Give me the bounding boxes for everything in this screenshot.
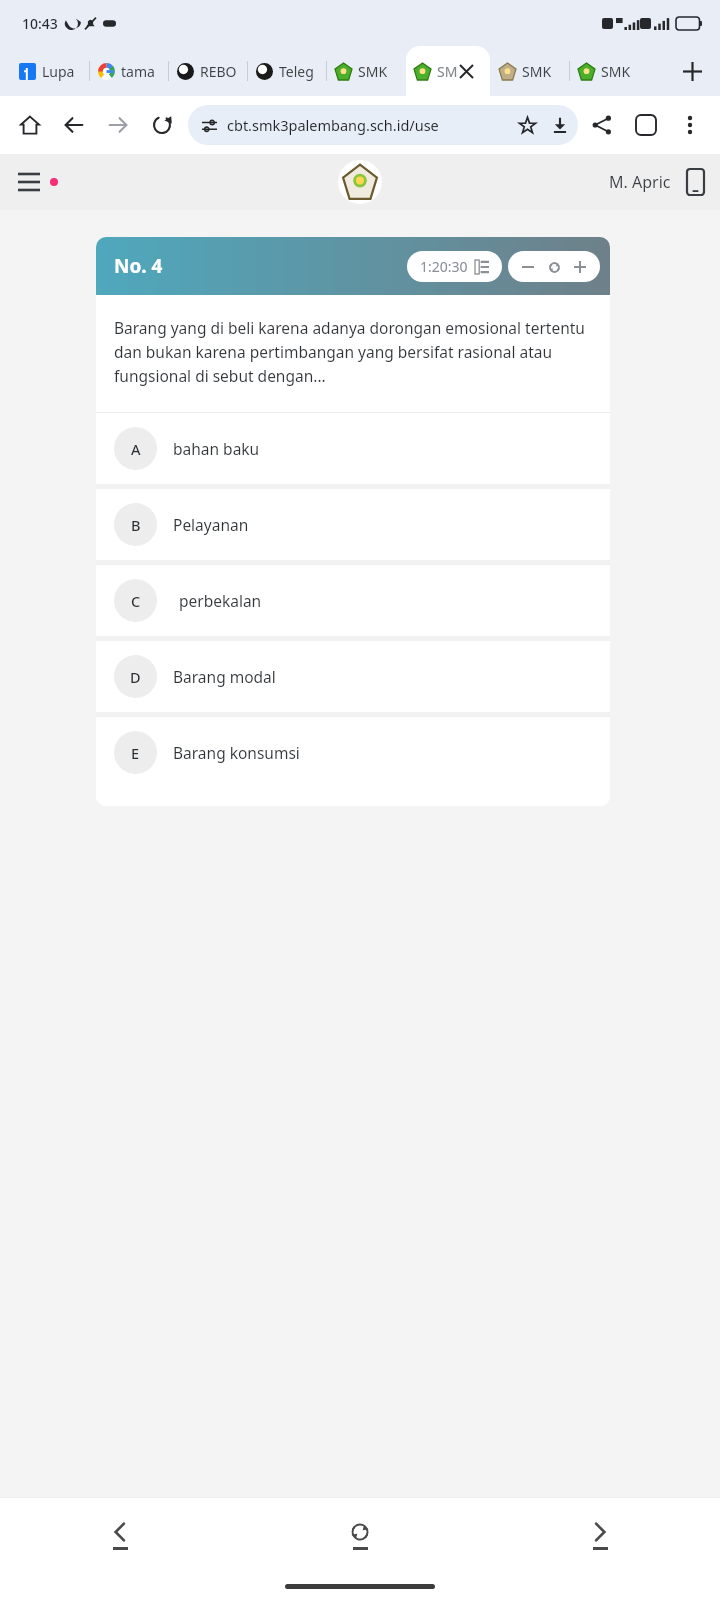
staticText: D [130,667,141,687]
staticText: Barang konsumsi [173,742,300,763]
button[interactable]: Decrease font [519,258,537,276]
staticText: Barang yang di beli karena adanya dorong… [114,317,592,386]
staticText: M. Apric [609,171,671,193]
button[interactable]: Back [52,103,96,147]
button[interactable]: M. Apric [609,169,704,195]
button[interactable]: Share [580,103,624,147]
button[interactable]: Previous [0,1498,240,1572]
button[interactable]: More options [668,103,712,147]
button[interactable]: tama [90,46,168,96]
button[interactable]: C [96,565,610,636]
staticText: C [131,591,141,611]
staticText: B [131,515,141,535]
button[interactable]: Next [480,1498,720,1572]
button[interactable]: Tabs [624,103,668,147]
button[interactable]: SMKN [491,46,569,96]
staticText: Pelayanan [173,514,249,535]
staticText: perbekalan [179,590,262,611]
button[interactable]: Reset font [545,258,563,276]
staticText: Barang modal [173,666,276,687]
button[interactable]: Increase font [571,258,589,276]
staticText: No. 4 [114,253,163,279]
staticText: Telegr [279,62,318,81]
staticText: SM [437,62,458,81]
button[interactable]: Telegr [248,46,326,96]
button[interactable]: D [96,641,610,712]
button[interactable]: REBO [169,46,247,96]
button[interactable]: Menu [14,170,62,194]
button[interactable]: Home [8,103,52,147]
button[interactable]: A [96,413,610,484]
button[interactable]: B [96,489,610,560]
button[interactable]: New tab [670,49,714,93]
button[interactable]: cbt.smk3palembang.sch.id/use [188,105,578,145]
staticText: cbt.smk3palembang.sch.id/use [227,115,439,135]
staticText: 10:43 [22,14,58,33]
button[interactable]: SMKN [327,46,405,96]
button[interactable]: 1:20:30 [407,251,502,282]
staticText: SMKN [522,62,561,81]
staticText: Lupa [42,62,75,81]
staticText: 1:20:30 [420,257,468,276]
button[interactable]: SM [406,46,490,96]
staticText: bahan baku [173,438,260,459]
button[interactable]: Reload [140,103,184,147]
staticText: E [131,743,140,763]
button[interactable]: Refresh [240,1498,480,1572]
staticText: A [131,439,141,459]
button[interactable]: E [96,717,610,788]
staticText: SMKN [601,62,640,81]
button[interactable]: SMKN [570,46,648,96]
button[interactable]: Forward [96,103,140,147]
staticText: REBO [200,62,237,81]
staticText: SMKN [358,62,397,81]
button[interactable]: Lupa [11,46,89,96]
staticText: tama [121,62,155,81]
